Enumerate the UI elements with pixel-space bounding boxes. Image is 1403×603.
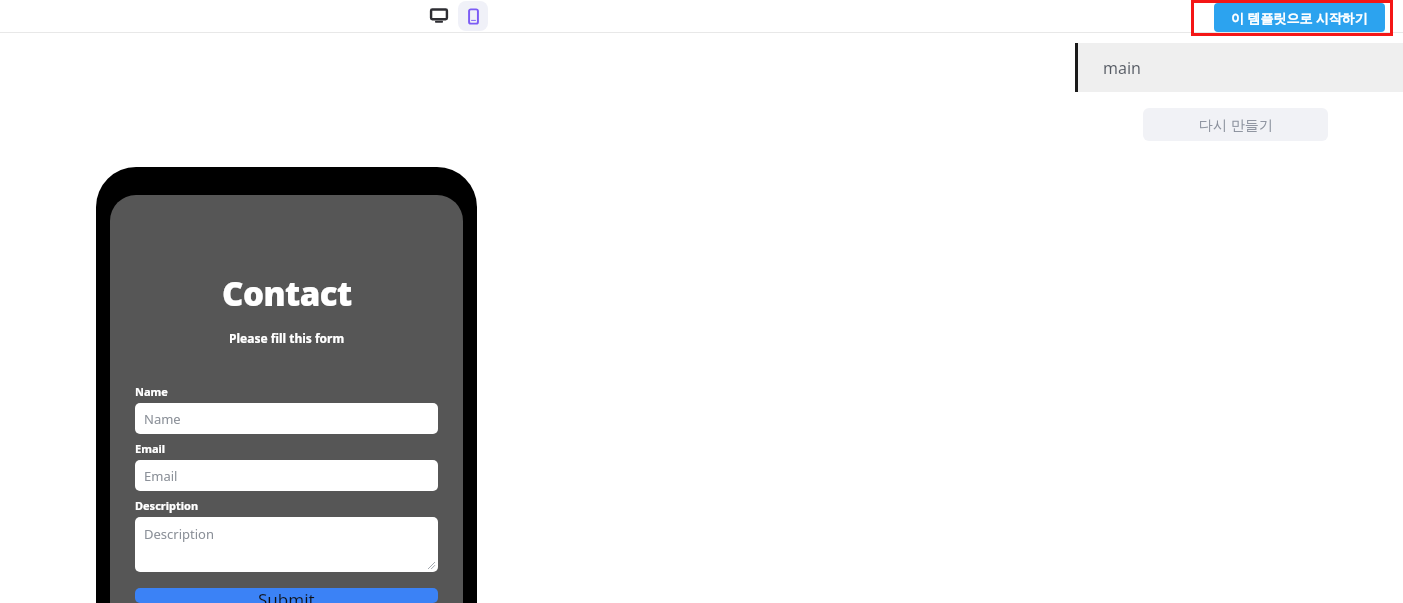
staticText: Email: [135, 441, 166, 456]
staticText: Name: [135, 384, 168, 399]
staticText: Description: [144, 525, 214, 543]
staticText: Submit: [258, 588, 315, 603]
staticText: main: [1103, 57, 1141, 79]
staticText: Contact: [222, 271, 352, 316]
button[interactable]: Name: [135, 403, 438, 434]
staticText: 이 템플릿으로 시작하기: [1231, 9, 1368, 27]
button[interactable]: Desktop preview: [424, 1, 454, 31]
button[interactable]: Email: [135, 460, 438, 491]
staticText: Description: [135, 498, 199, 513]
staticText: Name: [144, 410, 181, 428]
button[interactable]: Mobile preview: [458, 1, 488, 31]
staticText: 다시 만들기: [1199, 115, 1273, 134]
staticText: Please fill this form: [229, 330, 345, 346]
button[interactable]: 이 템플릿으로 시작하기: [1214, 3, 1385, 32]
button[interactable]: 다시 만들기: [1143, 108, 1328, 141]
staticText: Email: [144, 467, 178, 485]
button[interactable]: Description: [135, 517, 438, 572]
button[interactable]: main: [1075, 43, 1403, 92]
button[interactable]: Submit: [135, 588, 438, 603]
